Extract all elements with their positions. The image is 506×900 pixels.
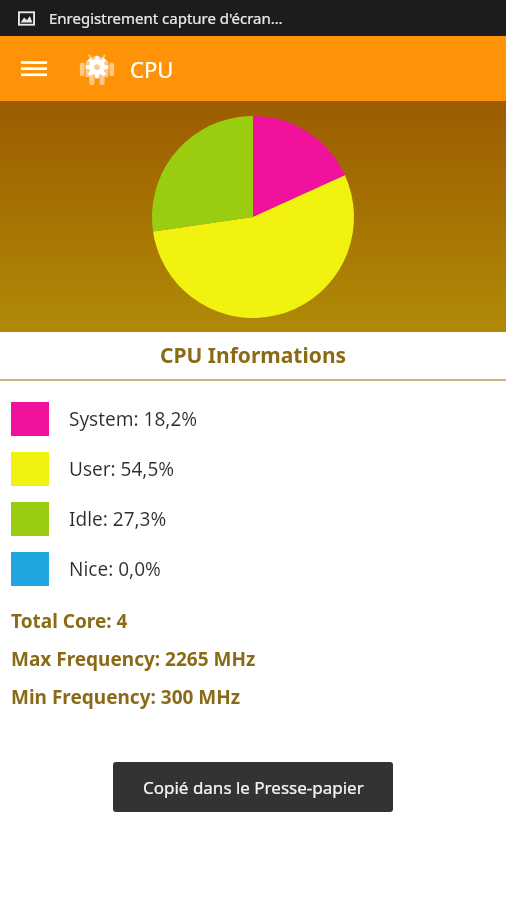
staticText: CPU Informations bbox=[160, 341, 347, 370]
button[interactable]: Copié dans le Presse-papier bbox=[113, 762, 393, 812]
staticText: User: 54,5% bbox=[69, 456, 175, 482]
button[interactable]: Total Core: 4 bbox=[0, 602, 506, 640]
button[interactable]: Idle: 27,3% bbox=[0, 494, 506, 544]
button[interactable]: User: 54,5% bbox=[0, 444, 506, 494]
button[interactable]: Max Frequency: 2265 MHz bbox=[0, 640, 506, 678]
staticText: System: 18,2% bbox=[69, 406, 198, 432]
button[interactable]: System: 18,2% bbox=[0, 394, 506, 444]
button[interactable]: CPU Informations bbox=[0, 332, 506, 379]
staticText: Total Core: 4 bbox=[11, 608, 128, 634]
staticText: CPU bbox=[130, 54, 174, 84]
button[interactable]: Min Frequency: 300 MHz bbox=[0, 678, 506, 716]
staticText: Copié dans le Presse-papier bbox=[143, 776, 364, 799]
button[interactable]: Nice: 0,0% bbox=[0, 544, 506, 594]
staticText: Nice: 0,0% bbox=[69, 556, 161, 582]
staticText: Enregistrement capture d'écran… bbox=[49, 8, 283, 28]
staticText: Idle: 27,3% bbox=[69, 506, 167, 532]
staticText: Max Frequency: 2265 MHz bbox=[11, 646, 256, 672]
button[interactable]: Open navigation drawer bbox=[10, 45, 58, 93]
staticText: Min Frequency: 300 MHz bbox=[11, 684, 241, 710]
